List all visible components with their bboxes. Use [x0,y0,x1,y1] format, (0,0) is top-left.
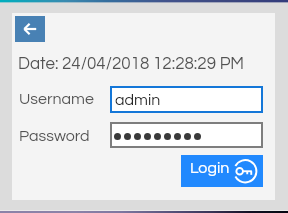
button[interactable]: admin [110,86,263,113]
button[interactable]: Back [15,16,45,42]
button[interactable]: Login [181,155,263,187]
button[interactable] [110,122,263,148]
staticText: Password [19,128,90,144]
staticText: admin [115,92,161,108]
staticText: Date: 24/04/2018 12:28:29 PM [18,55,245,73]
staticText: Username [19,91,94,107]
staticText: Login [190,160,230,176]
